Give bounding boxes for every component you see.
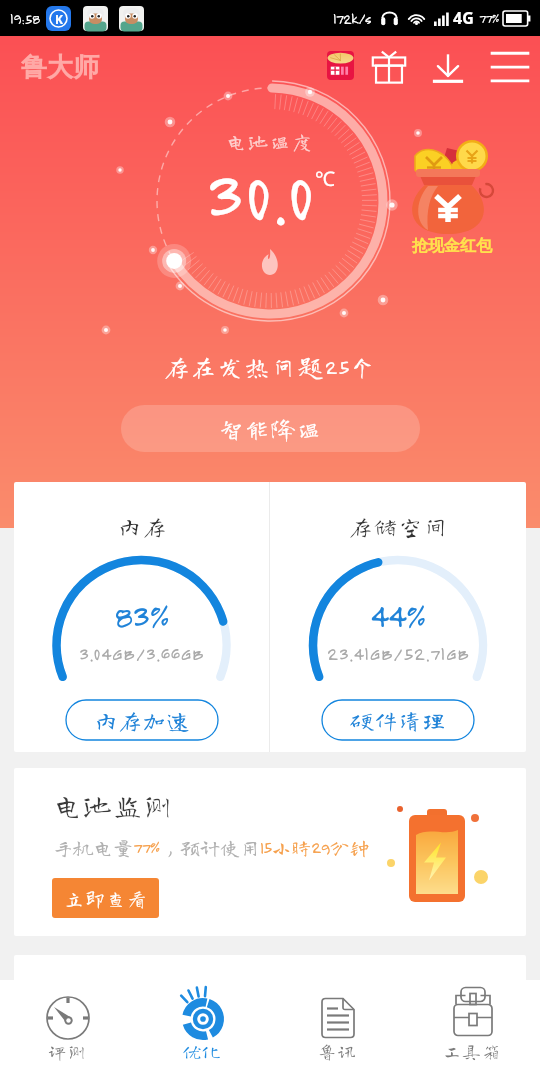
staticText: 鲁讯 — [318, 1042, 357, 1060]
button[interactable]: 鲁讯 — [270, 980, 405, 1080]
staticText: 3.04GB/3.66GB — [79, 643, 205, 665]
button[interactable]: Download — [430, 50, 466, 86]
staticText: 智能降温 — [219, 417, 323, 441]
staticText: 立即查看 — [64, 888, 148, 908]
staticText: 23.41GB/52.71GB — [327, 643, 470, 665]
staticText: ℃ — [315, 165, 335, 192]
staticText: 电池温度 — [226, 131, 314, 151]
button[interactable]: Cash red packet — [402, 140, 502, 258]
staticText: 4G — [453, 7, 474, 29]
staticText: 内存加速 — [94, 709, 190, 732]
button[interactable]: 智能降温 — [121, 405, 420, 452]
staticText: 77% — [479, 11, 499, 26]
staticText: 77% — [133, 837, 160, 857]
staticText: 优化 — [183, 1042, 222, 1060]
staticText: K — [55, 11, 63, 27]
staticText: 硬件清理 — [350, 709, 446, 732]
staticText: 15小时29分钟 — [260, 837, 370, 857]
button[interactable]: Promotion — [327, 51, 354, 80]
staticText: 存在发热问题25个 — [164, 354, 377, 379]
staticText: 存储空间 — [348, 515, 448, 538]
staticText: 电池监测 — [53, 790, 174, 819]
button[interactable]: 内存加速 — [66, 700, 218, 740]
staticText: 抢现金红包 — [412, 236, 492, 256]
staticText: 评测 — [48, 1042, 87, 1060]
button[interactable]: 评测 — [0, 980, 135, 1080]
button[interactable]: 立即查看 — [52, 878, 159, 918]
staticText: 鲁大师 — [21, 51, 99, 84]
staticText: 手机电量 — [53, 837, 133, 857]
staticText: 内存 — [117, 515, 167, 538]
staticText: 172k/s — [333, 10, 371, 27]
staticText: 44% — [370, 596, 426, 636]
staticText: ，预计使用 — [160, 837, 260, 857]
staticText: 工具箱 — [443, 1042, 502, 1060]
staticText: 19:58 — [10, 10, 40, 27]
staticText: 30.0 — [205, 151, 315, 237]
button[interactable]: 硬件清理 — [322, 700, 474, 740]
button[interactable]: 鲁大师 — [21, 51, 99, 84]
staticText: 83% — [114, 596, 169, 636]
button[interactable]: Menu — [489, 50, 531, 86]
button[interactable]: Gift — [371, 51, 407, 85]
button[interactable]: 优化 — [135, 980, 270, 1080]
button[interactable]: 工具箱 — [405, 980, 540, 1080]
